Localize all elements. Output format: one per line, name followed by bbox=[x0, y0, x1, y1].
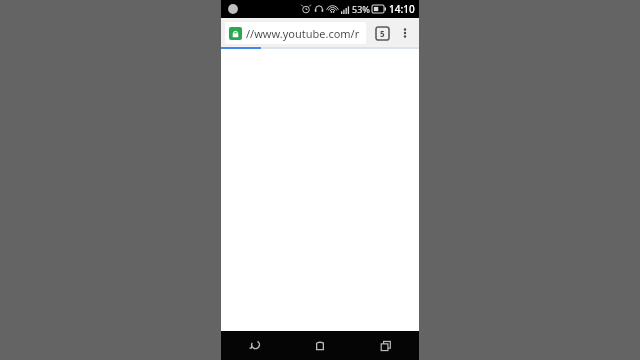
button[interactable]: More options bbox=[395, 23, 415, 43]
button[interactable]: Home bbox=[287, 331, 353, 360]
button[interactable]: Recent apps bbox=[353, 331, 419, 360]
staticText: 14:10 bbox=[389, 2, 415, 16]
staticText: 53% bbox=[352, 3, 370, 15]
button[interactable]: //www.youtube.com/r bbox=[225, 22, 366, 44]
staticText: //www.youtube.com/r bbox=[246, 26, 360, 41]
staticText: 5 bbox=[380, 28, 385, 39]
button[interactable]: Back bbox=[221, 331, 287, 360]
button[interactable]: Tabs, 5 open bbox=[371, 22, 393, 44]
